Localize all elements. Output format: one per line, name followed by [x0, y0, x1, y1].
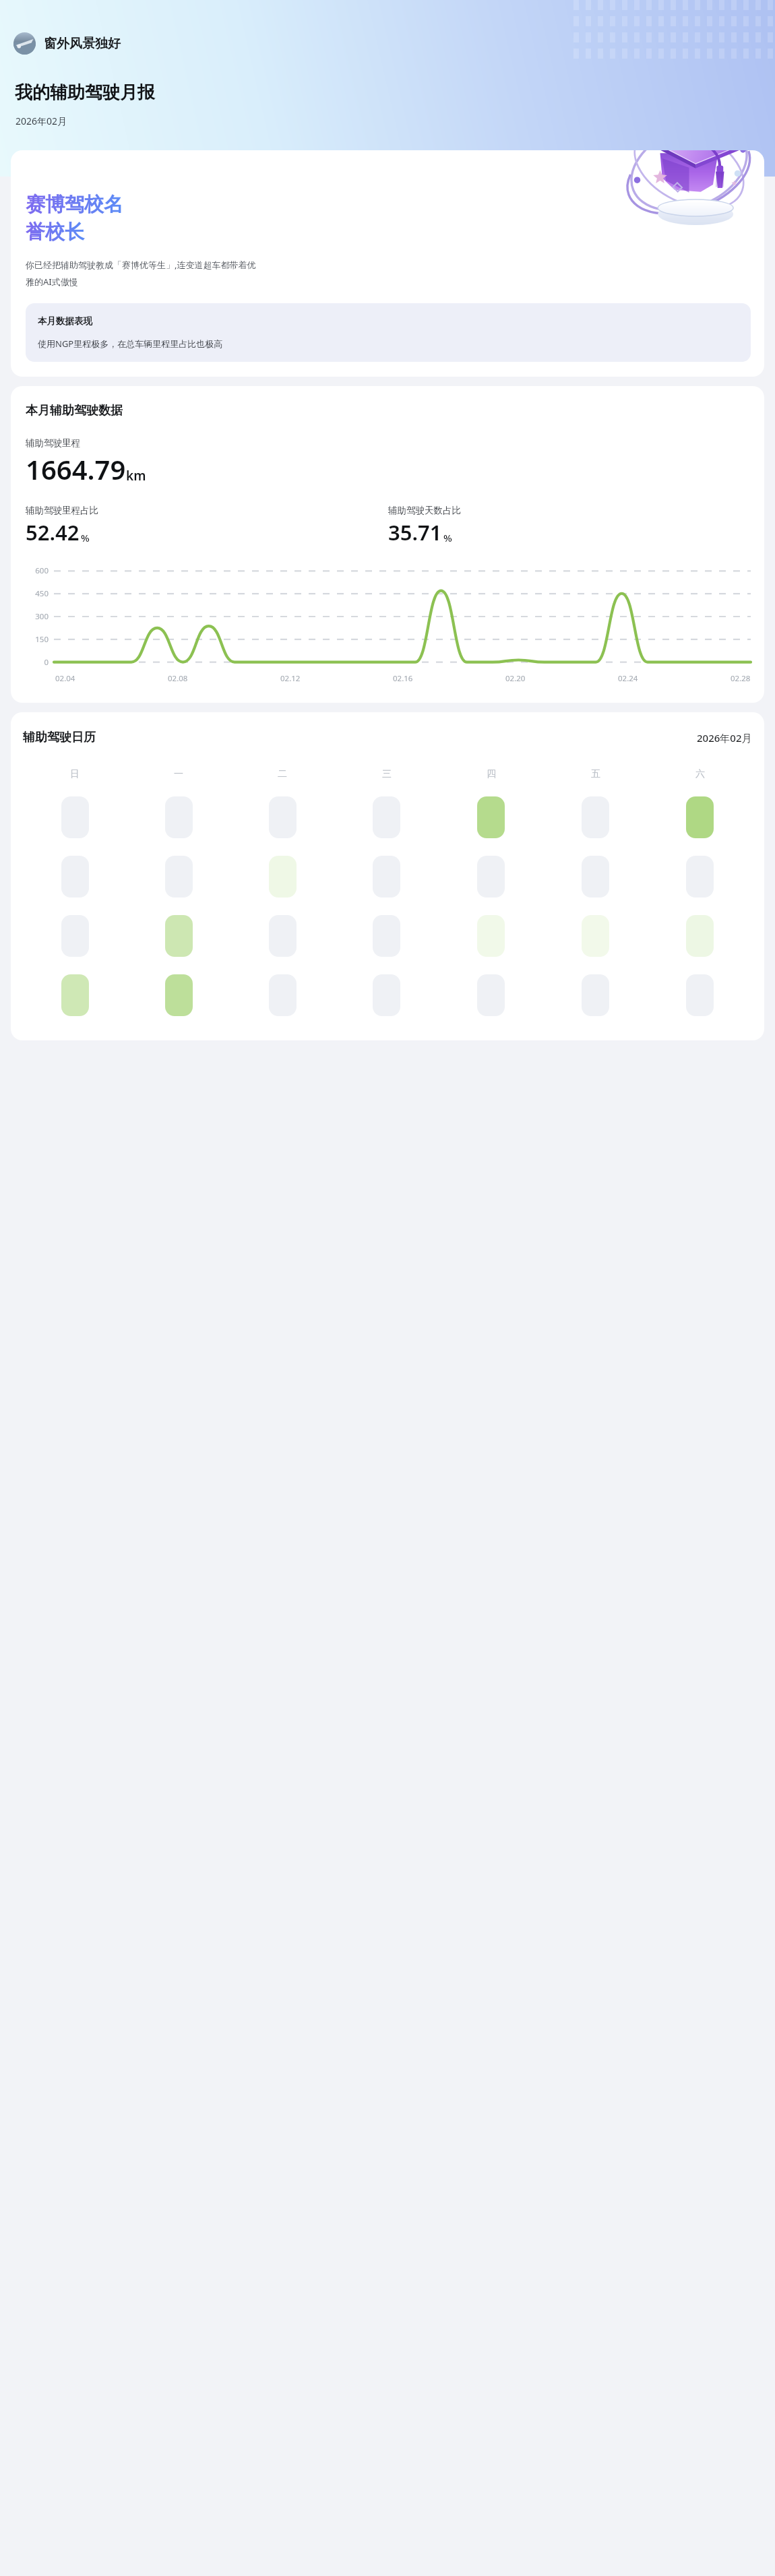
staticText: 本月辅助驾驶数据	[26, 403, 123, 418]
button[interactable]	[373, 974, 400, 1016]
button[interactable]	[582, 915, 609, 957]
staticText: 本月数据表现	[38, 315, 92, 327]
staticText: 0	[44, 657, 49, 668]
staticText: 02.28	[731, 673, 751, 684]
staticText: 02.04	[55, 673, 75, 684]
staticText: 辅助驾驶里程占比	[26, 505, 98, 516]
button[interactable]	[686, 974, 714, 1016]
staticText: 02.12	[280, 673, 301, 684]
button[interactable]	[61, 974, 89, 1016]
staticText: 六	[695, 768, 705, 780]
staticText: 日	[70, 768, 80, 780]
button[interactable]	[165, 856, 193, 898]
button[interactable]	[686, 915, 714, 957]
staticText: 我的辅助驾驶月报	[15, 82, 155, 104]
button[interactable]	[61, 856, 89, 898]
button[interactable]	[269, 915, 297, 957]
button[interactable]	[477, 796, 505, 838]
button[interactable]	[582, 796, 609, 838]
button[interactable]	[269, 974, 297, 1016]
button[interactable]	[477, 856, 505, 898]
button[interactable]	[269, 856, 297, 898]
staticText: 使用NGP里程极多，在总车辆里程里占比也极高	[38, 338, 223, 350]
button[interactable]	[477, 974, 505, 1016]
staticText: 150	[35, 634, 49, 645]
button[interactable]: 赛博驾校名	[11, 150, 764, 377]
staticText: 二	[278, 768, 287, 780]
button[interactable]	[582, 856, 609, 898]
button[interactable]: 辅助驾驶日历	[11, 712, 764, 1040]
staticText: 辅助驾驶日历	[23, 730, 96, 745]
staticText: 窗外风景独好	[44, 36, 121, 52]
staticText: 1664.79	[26, 451, 126, 487]
button[interactable]: 本月数据表现	[26, 303, 751, 362]
staticText: 2026年02月	[15, 115, 67, 127]
other: Profile avatar	[13, 32, 36, 55]
staticText: 35.71	[388, 518, 442, 546]
staticText: 誉校长	[26, 220, 84, 245]
staticText: 辅助驾驶天数占比	[388, 505, 461, 516]
button[interactable]: Profile avatar	[13, 32, 121, 55]
staticText: 600	[35, 565, 49, 576]
staticText: 52.42	[26, 518, 80, 546]
button[interactable]	[373, 915, 400, 957]
button[interactable]	[373, 796, 400, 838]
button[interactable]	[165, 915, 193, 957]
staticText: 02.08	[168, 673, 188, 684]
button[interactable]: 辅助驾驶里程占比	[26, 505, 388, 546]
button[interactable]	[373, 856, 400, 898]
staticText: %	[81, 531, 90, 544]
staticText: 四	[487, 768, 496, 780]
staticText: 300	[35, 611, 49, 622]
button[interactable]	[61, 915, 89, 957]
staticText: 02.16	[393, 673, 413, 684]
staticText: 赛博驾校名	[26, 192, 123, 217]
staticText: 辅助驾驶里程	[26, 437, 80, 449]
button[interactable]	[61, 796, 89, 838]
staticText: 02.20	[505, 673, 526, 684]
button[interactable]	[477, 915, 505, 957]
button[interactable]	[686, 856, 714, 898]
staticText: %	[443, 531, 452, 544]
button[interactable]: 本月辅助驾驶数据	[11, 386, 764, 703]
staticText: 三	[382, 768, 392, 780]
staticText: 一	[174, 768, 183, 780]
button[interactable]: 辅助驾驶天数占比	[388, 505, 751, 546]
button[interactable]	[269, 796, 297, 838]
button[interactable]	[165, 796, 193, 838]
button[interactable]	[582, 974, 609, 1016]
button[interactable]	[686, 796, 714, 838]
staticText: 02.24	[618, 673, 638, 684]
button[interactable]	[165, 974, 193, 1016]
staticText: 五	[591, 768, 600, 780]
staticText: 450	[35, 588, 49, 599]
staticText: 2026年02月	[697, 731, 752, 745]
staticText: km	[126, 467, 146, 484]
staticText: 你已经把辅助驾驶教成「赛博优等生」,连变道超车都带着优 雅的AI式傲慢	[26, 259, 256, 288]
